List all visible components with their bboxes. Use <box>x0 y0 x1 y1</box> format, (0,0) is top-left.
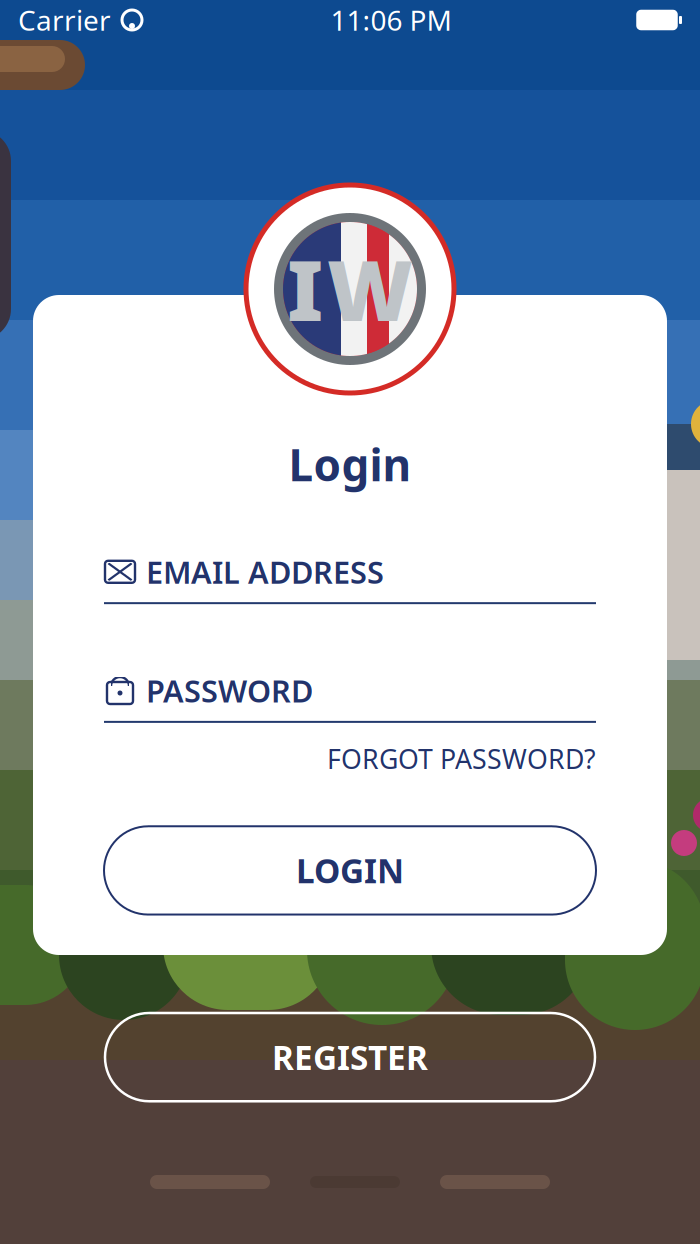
staticText: 11:06 PM <box>330 1 451 39</box>
staticText: LOGIN <box>296 848 404 893</box>
staticText: W <box>327 234 413 344</box>
staticText: PASSWORD <box>146 670 313 711</box>
staticText: Login <box>288 435 411 493</box>
staticText: EMAIL ADDRESS <box>146 551 384 592</box>
button[interactable]: REGISTER <box>105 1013 595 1101</box>
staticText: Carrier <box>18 1 111 39</box>
staticText: I <box>287 234 323 344</box>
button[interactable]: FORGOT PASSWORD? <box>104 737 596 780</box>
button[interactable]: LOGIN <box>104 826 596 915</box>
staticText: FORGOT PASSWORD? <box>327 741 596 776</box>
staticText: REGISTER <box>272 1035 428 1079</box>
